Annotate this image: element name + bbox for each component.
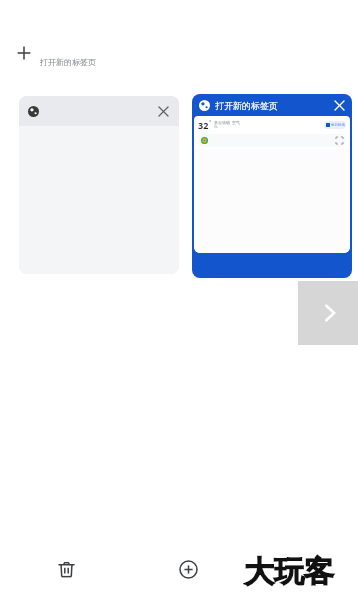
- button[interactable]: 关闭所有标签页: [47, 550, 85, 588]
- staticText: 打开新的标签页: [215, 100, 278, 111]
- button[interactable]: [198, 134, 346, 147]
- staticText: 优: [214, 125, 218, 129]
- staticText: 32: [198, 119, 209, 131]
- button[interactable]: 打开新的标签页: [8, 40, 128, 80]
- button[interactable]: 打开新的标签页: [192, 94, 352, 278]
- button[interactable]: 关闭标签页: [330, 96, 348, 114]
- button[interactable]: 关闭标签页: [19, 96, 179, 274]
- button[interactable]: 新建标签页: [169, 550, 207, 588]
- button[interactable]: 关闭标签页: [153, 101, 173, 121]
- staticText: 打开新的标签页: [40, 57, 96, 67]
- staticText: °: [209, 119, 212, 126]
- button[interactable]: 下一个: [298, 281, 358, 345]
- staticText: 每日精选: [331, 123, 345, 127]
- staticText: 多云转晴 空气: [214, 120, 241, 125]
- staticText: 大玩客: [244, 553, 334, 591]
